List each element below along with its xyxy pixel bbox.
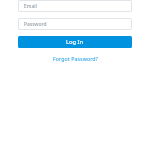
staticText: Forgot Password?: [53, 55, 98, 62]
button[interactable]: Email: [18, 0, 132, 12]
staticText: Email: [24, 3, 37, 10]
button[interactable]: Password: [18, 18, 132, 30]
staticText: Password: [24, 21, 47, 28]
button[interactable]: Log In: [18, 36, 132, 48]
button[interactable]: Forgot Password?: [0, 55, 150, 62]
staticText: Log In: [66, 38, 84, 46]
